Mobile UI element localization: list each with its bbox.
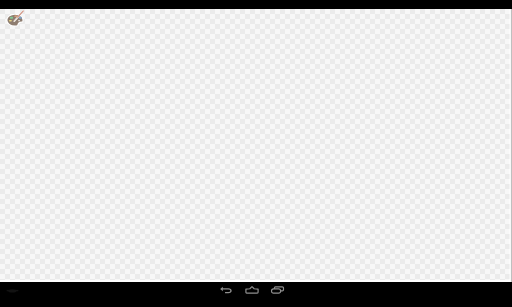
button[interactable]: Recent apps [264,282,290,307]
button[interactable]: Back [213,282,239,307]
button[interactable]: Palette [6,10,24,27]
button[interactable]: Home [239,282,265,307]
button[interactable]: Hide navigation [2,282,22,307]
